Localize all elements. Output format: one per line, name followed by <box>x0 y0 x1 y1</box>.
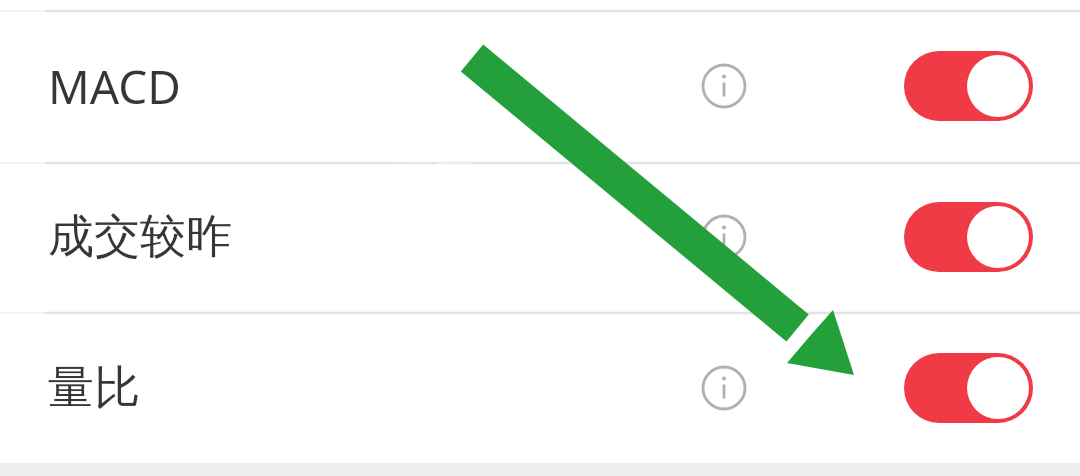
button[interactable]: Info about MACD <box>692 54 756 118</box>
button[interactable]: Toggle 成交较昨 <box>904 202 1033 272</box>
staticText: 量比 <box>48 359 140 417</box>
button[interactable]: Toggle 量比 <box>904 353 1033 423</box>
button[interactable]: Info about 成交较昨 <box>692 205 756 269</box>
staticText: MACD <box>48 55 181 118</box>
staticText: Baidu经验 <box>278 118 472 173</box>
button[interactable]: Toggle MACD <box>904 51 1033 121</box>
staticText: 成交较昨 <box>48 208 232 266</box>
button[interactable]: 成交较昨 <box>0 162 1080 312</box>
button[interactable]: MACD <box>0 10 1080 162</box>
button[interactable]: Info about 量比 <box>692 356 756 420</box>
button[interactable]: 量比 <box>0 312 1080 463</box>
